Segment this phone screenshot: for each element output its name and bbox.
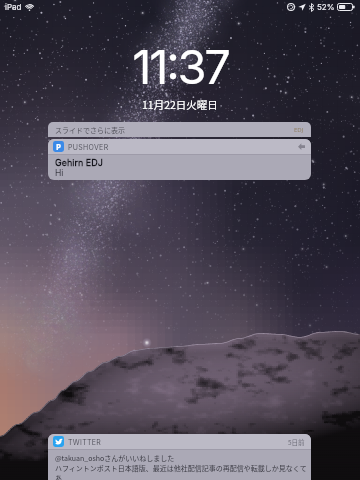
staticText: 5日前: [288, 437, 305, 446]
button[interactable]: TWITTER: [48, 434, 311, 480]
staticText: ハフィントンポスト日本語版、最近は他社配信記事の再配信や転載しか見なくてあ っと…: [55, 463, 307, 480]
staticText: Gehirn EDJ: [55, 157, 103, 168]
staticText: TWITTER: [68, 438, 102, 446]
staticText: EDJ: [294, 126, 304, 134]
other: Rotation lock: [287, 3, 295, 11]
staticText: Hi: [55, 168, 64, 178]
staticText: 52%: [317, 2, 335, 12]
button[interactable]: P: [48, 139, 311, 180]
other: Battery 52 percent: [337, 3, 355, 11]
staticText: PUSHOVER: [68, 143, 109, 151]
staticText: iPad: [5, 2, 22, 12]
staticText: @takuan_oshoさんがいいねしました: [55, 453, 175, 463]
staticText: P: [56, 141, 61, 152]
staticText: 11:37: [132, 38, 229, 95]
button[interactable]: スライドでさらに表示: [48, 122, 311, 137]
other: Bluetooth: [309, 3, 314, 12]
staticText: スライドでさらに表示: [55, 125, 125, 135]
other: Location: [298, 3, 306, 11]
staticText: 11月22日火曜日: [142, 97, 218, 112]
